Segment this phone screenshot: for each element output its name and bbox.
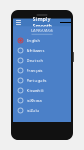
staticText: Deutsch (26, 58, 43, 63)
staticText: Français (26, 68, 42, 73)
button[interactable]: Français (13, 65, 71, 75)
button[interactable]: English (13, 35, 71, 45)
staticText: Português (26, 78, 46, 83)
button[interactable]: Menu (13, 18, 24, 26)
button[interactable]: Kiswahili (13, 85, 71, 95)
staticText: Afrikaans (26, 48, 44, 53)
staticText: isiXhosa (26, 98, 41, 103)
staticText: LANGUAGE (31, 27, 53, 33)
button[interactable]: Deutsch (13, 55, 71, 65)
button[interactable]: Afrikaans (13, 45, 71, 55)
button[interactable]: Português (13, 75, 71, 85)
staticText: English (26, 38, 40, 43)
staticText: Kiswahili (26, 88, 43, 93)
button[interactable]: isiZulu (13, 105, 71, 115)
staticText: isiZulu (26, 108, 39, 113)
button[interactable]: isiXhosa (13, 95, 71, 105)
staticText: Simply Smooth (32, 15, 51, 30)
